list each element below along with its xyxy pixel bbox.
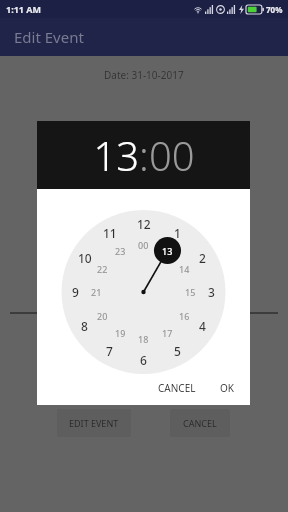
staticText: 23	[115, 245, 126, 257]
staticText: 7	[106, 343, 113, 359]
button[interactable]: CANCEL	[150, 377, 204, 399]
staticText: 14	[179, 263, 190, 275]
staticText: Date: 31-10-2017	[104, 68, 184, 82]
staticText: 16	[179, 310, 190, 322]
staticText: CANCEL	[183, 417, 217, 429]
staticText: 9	[72, 284, 79, 300]
staticText: 4	[199, 318, 206, 334]
staticText: 2	[199, 250, 206, 266]
staticText: 22	[97, 263, 108, 275]
staticText: 1:11 AM	[6, 3, 42, 15]
staticText: 70%	[266, 4, 283, 15]
staticText: 6	[140, 352, 147, 368]
staticText: CANCEL	[158, 381, 196, 395]
staticText: 21	[91, 286, 102, 298]
button[interactable]: OK	[212, 377, 242, 399]
staticText: 3	[208, 284, 215, 300]
staticText: 11	[103, 225, 117, 241]
staticText: Edit Event	[14, 27, 84, 47]
staticText: 13	[162, 245, 173, 257]
staticText: 18	[138, 333, 149, 345]
staticText: EDIT EVENT	[69, 417, 119, 429]
staticText: 17	[162, 327, 173, 339]
button[interactable]: CANCEL	[170, 409, 230, 437]
staticText: OK	[220, 381, 234, 395]
staticText: 13:00	[93, 128, 195, 182]
staticText: 10	[78, 250, 92, 266]
staticText: 00	[138, 239, 149, 251]
button[interactable]: EDIT EVENT	[57, 409, 131, 437]
staticText: 15	[185, 286, 196, 298]
staticText: 8	[81, 318, 88, 334]
staticText: 1	[174, 225, 181, 241]
staticText: 12	[137, 216, 151, 232]
staticText: 19	[115, 327, 126, 339]
staticText: 20	[97, 310, 108, 322]
staticText: 5	[174, 343, 181, 359]
